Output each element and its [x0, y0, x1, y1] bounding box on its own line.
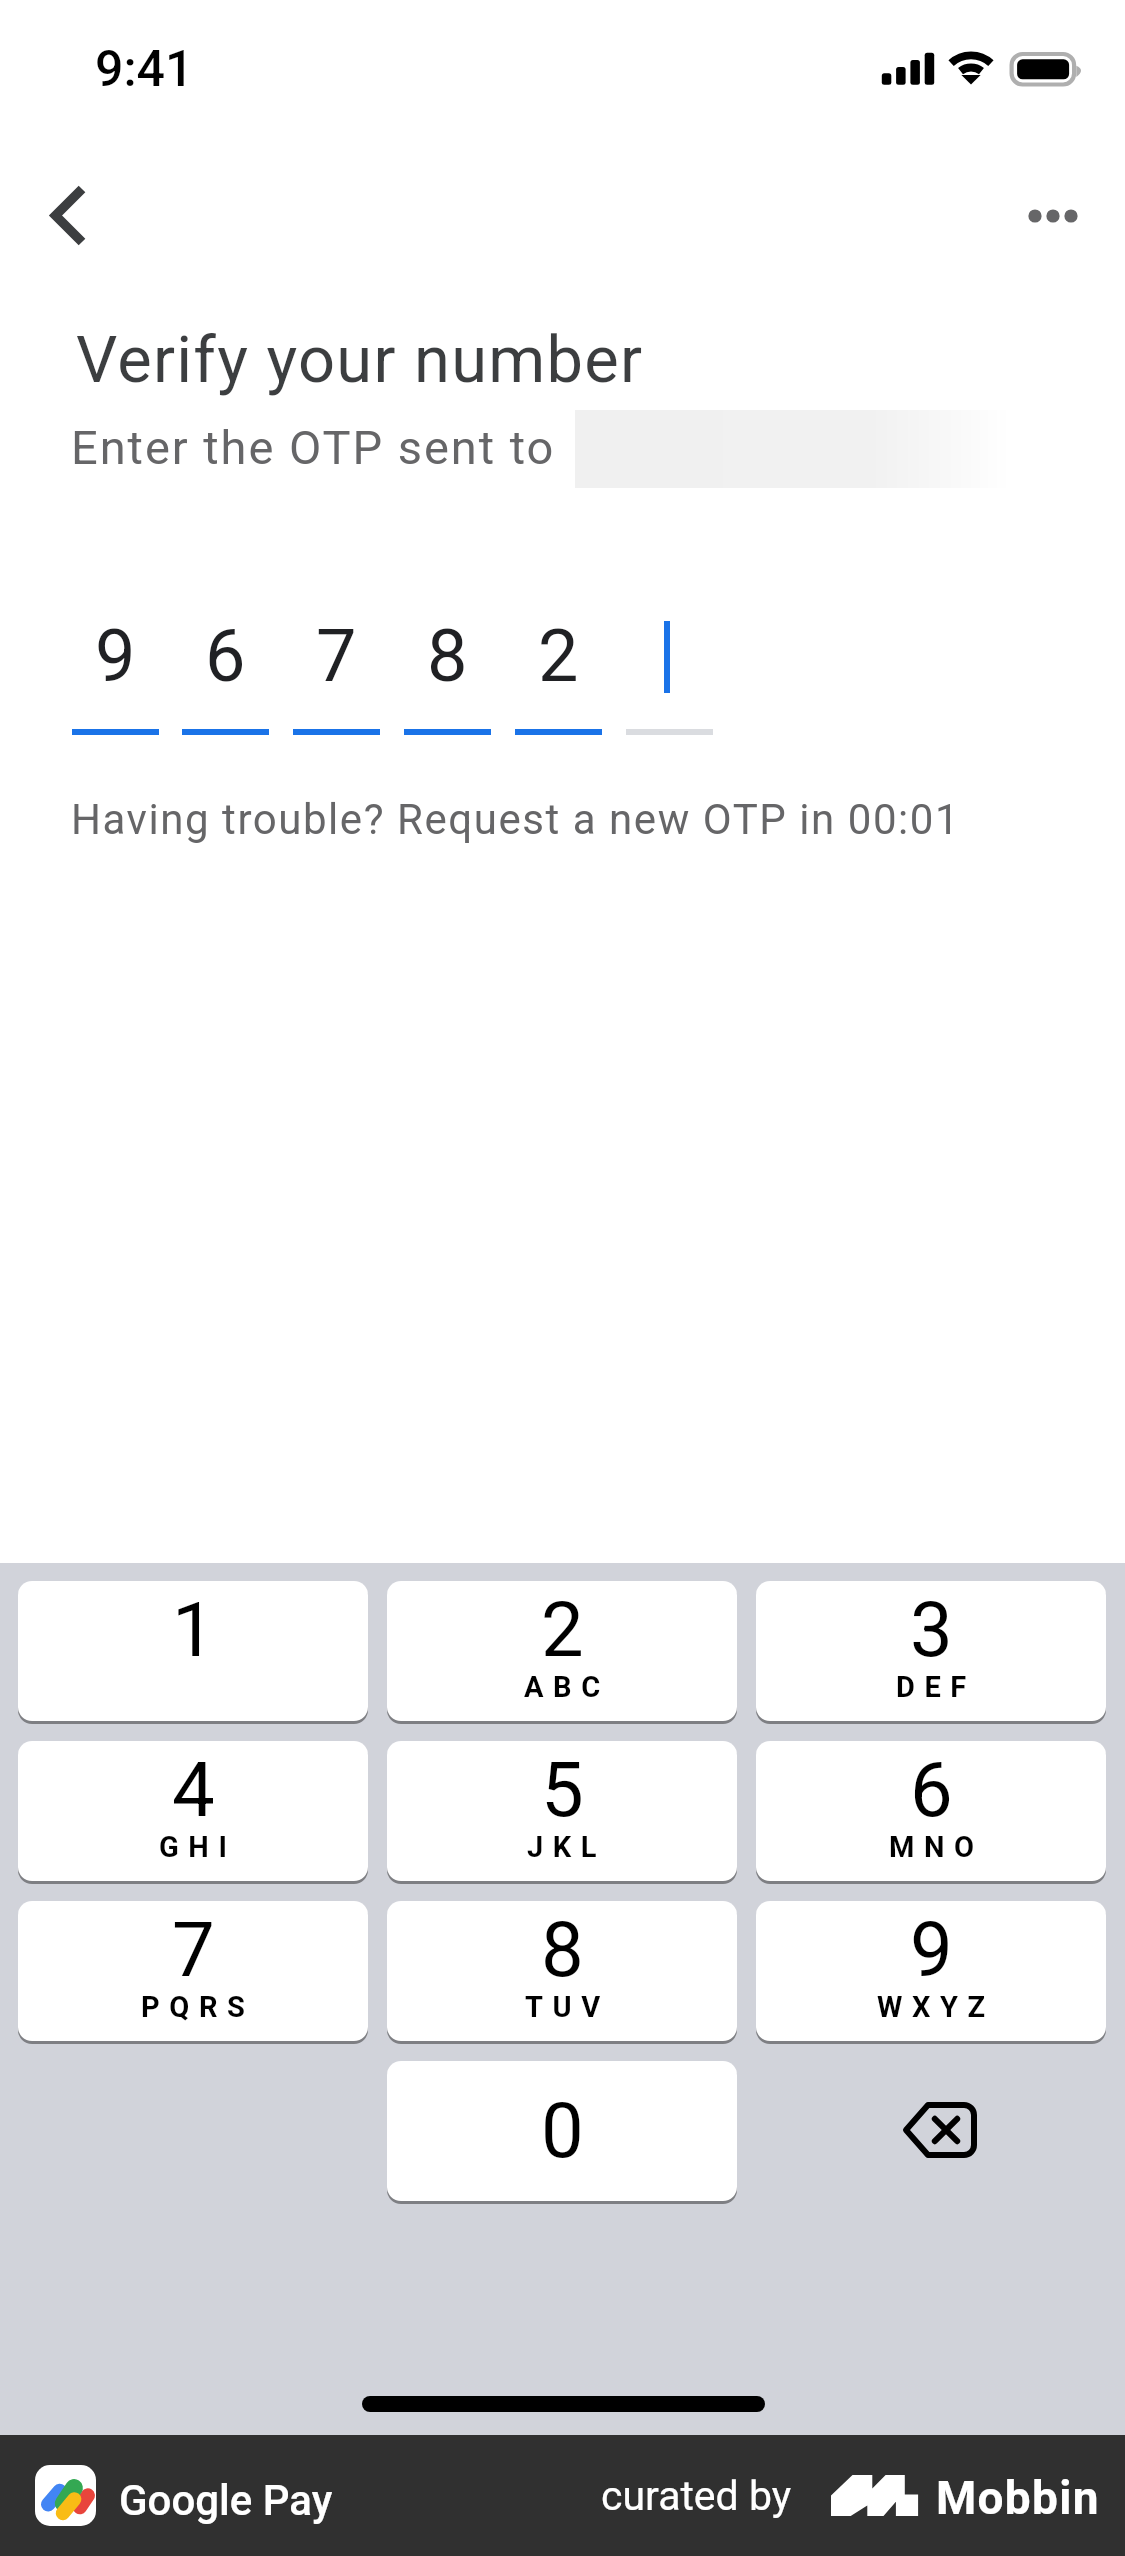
staticText: 8 — [541, 1905, 584, 1994]
staticText: 0 — [541, 2086, 584, 2175]
staticText: MNO — [889, 1830, 984, 1864]
staticText: WXYZ — [877, 1990, 995, 2024]
staticText: curated by — [601, 2472, 792, 2520]
staticText: 2 — [538, 614, 579, 698]
staticText: Having trouble? Request a new OTP in 00:… — [71, 795, 961, 844]
staticText: JKL — [527, 1830, 607, 1864]
staticText: Google Pay — [119, 2476, 333, 2525]
button[interactable]: Having trouble? Request a new OTP in 00:… — [60, 782, 970, 852]
staticText: Verify your number — [76, 322, 644, 398]
button[interactable]: OTP digit 5 — [515, 610, 602, 735]
button[interactable]: 0 — [387, 2061, 737, 2201]
button[interactable]: OTP digit 6 — [626, 610, 713, 735]
staticText: TUV — [525, 1990, 610, 2024]
staticText: 6 — [205, 614, 246, 698]
staticText: 3 — [910, 1585, 953, 1674]
button[interactable]: 2 — [387, 1581, 737, 1721]
button[interactable]: More options — [1005, 170, 1097, 262]
staticText: ABC — [524, 1670, 610, 1704]
other: Google Pay — [35, 2465, 96, 2526]
other: Mobbin logo — [831, 2475, 919, 2517]
staticText: PQRS — [141, 1990, 255, 2024]
staticText: 7 — [172, 1905, 215, 1994]
button[interactable]: 5 — [387, 1741, 737, 1881]
staticText: 9:41 — [95, 40, 194, 99]
button[interactable]: 4 — [18, 1741, 368, 1881]
button[interactable]: 7 — [18, 1901, 368, 2041]
staticText: 4 — [172, 1745, 215, 1834]
button[interactable]: 3 — [756, 1581, 1106, 1721]
staticText: 8 — [427, 614, 468, 698]
staticText: 5 — [541, 1745, 584, 1834]
other: Signal, Wi-Fi and battery status — [870, 40, 1090, 95]
button[interactable]: OTP digit 4 — [404, 610, 491, 735]
staticText: DEF — [896, 1670, 976, 1704]
button[interactable]: 9 — [756, 1901, 1106, 2041]
staticText: 7 — [316, 614, 357, 698]
button[interactable]: OTP digit 3 — [293, 610, 380, 735]
staticText: Mobbin — [936, 2471, 1100, 2525]
button[interactable]: 8 — [387, 1901, 737, 2041]
button[interactable]: 6 — [756, 1741, 1106, 1881]
staticText: GHI — [159, 1830, 237, 1864]
staticText: 1 — [172, 1585, 215, 1674]
button[interactable]: Back — [12, 170, 104, 262]
staticText: 2 — [541, 1585, 584, 1674]
staticText: 9 — [910, 1905, 953, 1994]
staticText: 6 — [910, 1745, 953, 1834]
button[interactable]: OTP digit 2 — [182, 610, 269, 735]
staticText: Enter the OTP sent to — [71, 420, 569, 475]
button[interactable]: Backspace — [756, 2061, 1106, 2201]
staticText: 9 — [95, 614, 136, 698]
button[interactable]: 1 — [18, 1581, 368, 1721]
button[interactable]: OTP digit 1 — [72, 610, 159, 735]
